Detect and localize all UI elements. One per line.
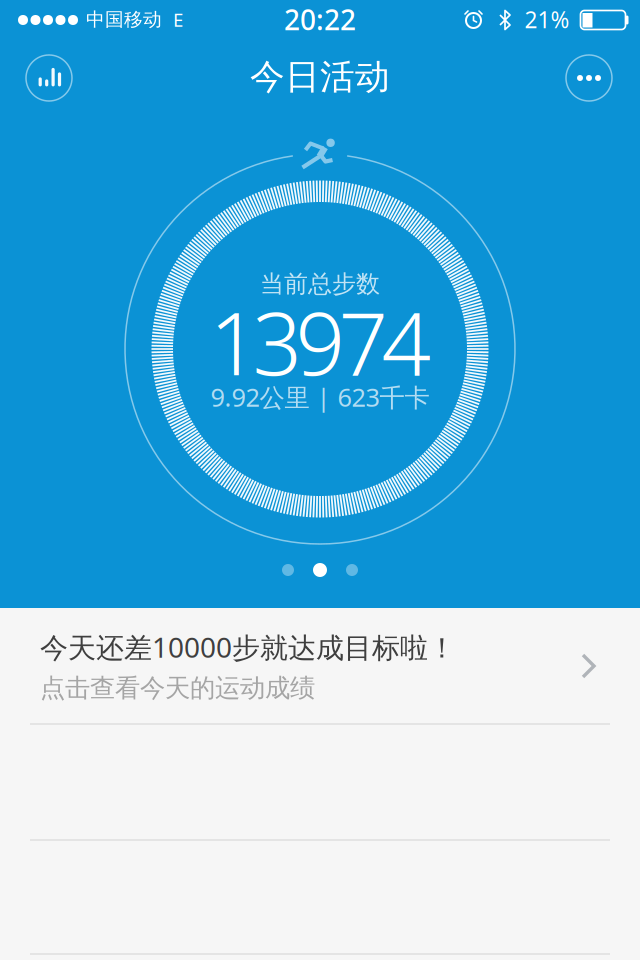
staticText: 今天还差10000步就达成目标啦！ (40, 628, 456, 666)
button[interactable]: 更多 (557, 46, 621, 110)
staticText: 20:22 (284, 1, 356, 38)
staticText: 21% (524, 4, 569, 34)
staticText: 当前总步数 (260, 269, 380, 299)
staticText: 今日活动 (250, 56, 390, 98)
staticText: 13974 (209, 284, 430, 399)
staticText: 中国移动 (86, 8, 162, 31)
staticText: 9.92公里 | 623千卡 (210, 380, 429, 414)
staticText: E (173, 7, 183, 32)
staticText: 点击查看今天的运动成绩 (40, 672, 315, 704)
button[interactable]: 今天还差10000步就达成目标啦！ (0, 608, 640, 724)
button[interactable]: 统计 (17, 46, 81, 110)
